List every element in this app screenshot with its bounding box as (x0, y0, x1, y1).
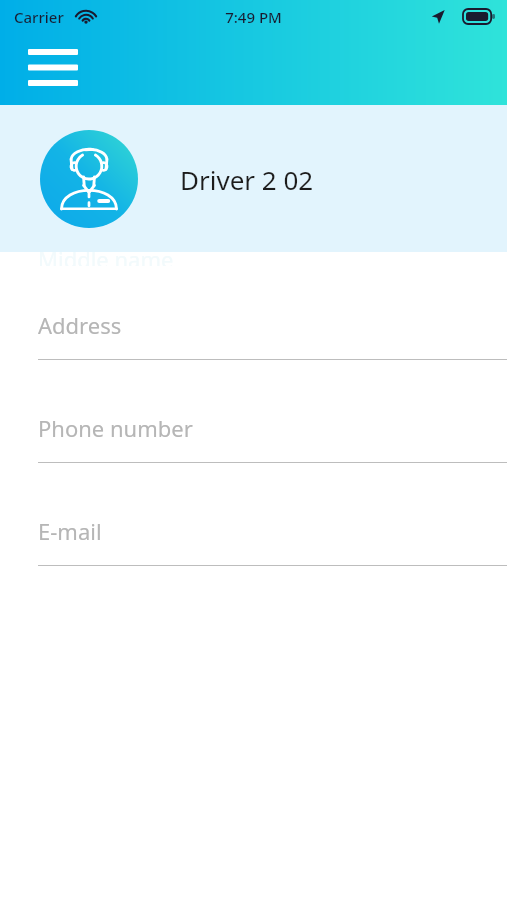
staticText: Carrier (14, 7, 64, 27)
staticText: E-mail (38, 516, 102, 546)
staticText: Driver 2 02 (180, 162, 314, 197)
button[interactable]: Driver 2 02 (0, 105, 507, 252)
button[interactable]: E-mail (0, 516, 507, 566)
button[interactable]: Phone number (0, 413, 507, 463)
staticText: Middle name (38, 244, 174, 266)
button[interactable]: Open navigation menu (18, 40, 88, 94)
staticText: 7:49 PM (225, 7, 282, 27)
staticText: Phone number (38, 413, 193, 443)
staticText: Address (38, 310, 122, 340)
button[interactable]: Address (0, 310, 507, 360)
